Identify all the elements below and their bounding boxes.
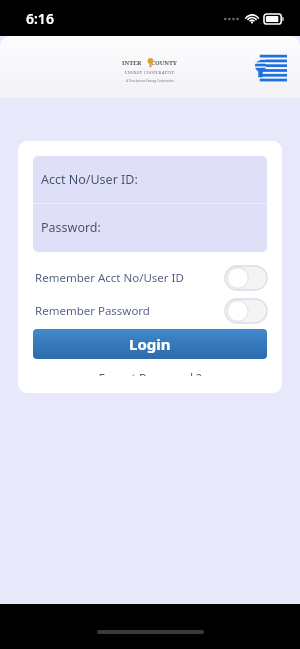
button[interactable]: Password: (33, 204, 267, 251)
staticText: 6:16 (26, 9, 54, 28)
button[interactable]: Toggle (225, 299, 267, 323)
button[interactable]: Login (33, 329, 267, 359)
staticText: ENERGY COOPERATIVE (125, 70, 175, 75)
button[interactable]: Forgot Password ? (92, 368, 208, 378)
staticText: Login (129, 334, 171, 354)
button[interactable]: Toggle (225, 266, 267, 290)
staticText: Remember Acct No/User ID (35, 270, 225, 286)
staticText: Acct No/User ID: (41, 171, 138, 188)
staticText: INTER (122, 59, 142, 67)
button[interactable]: Energy menu (253, 53, 287, 82)
button[interactable]: Acct No/User ID: (33, 156, 267, 203)
staticText: Forgot Password ? (98, 370, 202, 376)
staticText: Remember Password (35, 303, 225, 319)
button[interactable]: Remember Password (33, 298, 267, 324)
staticText: Password: (41, 219, 101, 236)
staticText: COUNTY (151, 59, 178, 67)
button[interactable]: Remember Acct No/User ID (33, 265, 267, 291)
staticText: A Touchstone Energy Cooperative (126, 79, 175, 83)
